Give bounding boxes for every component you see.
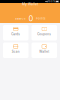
button[interactable]: Coupons: [31, 25, 57, 40]
button[interactable]: Wallet: [31, 42, 57, 58]
staticText: Coupons: [37, 32, 51, 36]
staticText: Cards: [11, 32, 20, 36]
staticText: 100%: [48, 0, 55, 3]
staticText: 0: [28, 14, 33, 23]
button[interactable]: My Wallet: [22, 2, 38, 6]
staticText: Scan: [12, 50, 20, 53]
button[interactable]: Scan: [3, 42, 28, 58]
staticText: Wallet: [39, 50, 49, 53]
button[interactable]: Cards: [3, 25, 28, 40]
staticText: My Wallet: [22, 2, 38, 6]
staticText: Points: [36, 17, 45, 20]
staticText: Balance: [15, 17, 26, 20]
